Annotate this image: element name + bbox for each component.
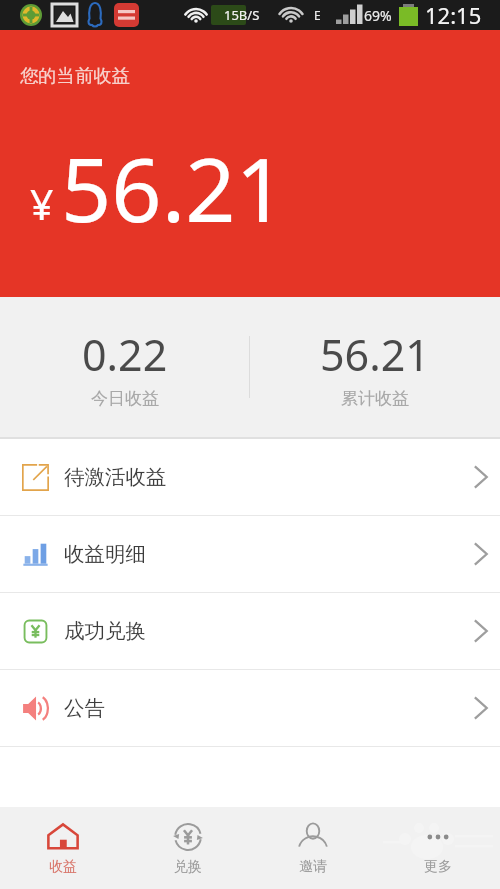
staticText: 69%: [364, 6, 392, 25]
staticText: ¥: [30, 176, 54, 232]
staticText: 收益: [49, 858, 77, 876]
button[interactable]: 成功兑换: [0, 593, 500, 669]
staticText: 公告: [64, 695, 105, 721]
staticText: 0.22: [82, 325, 168, 384]
button[interactable]: 兑换: [125, 807, 250, 889]
staticText: 今日收益: [91, 388, 159, 409]
button[interactable]: 待激活收益: [0, 439, 500, 515]
staticText: 15B/S: [224, 6, 260, 24]
button[interactable]: 累计收益: [250, 297, 500, 437]
button[interactable]: 邀请: [250, 807, 375, 889]
staticText: 56.21: [320, 325, 430, 384]
button[interactable]: 更多: [375, 807, 500, 889]
staticText: 更多: [424, 858, 452, 876]
button[interactable]: 今日收益: [0, 297, 249, 437]
staticText: 兑换: [174, 858, 202, 876]
staticText: 收益明细: [64, 541, 146, 567]
staticText: 待激活收益: [64, 464, 167, 490]
button[interactable]: 收益: [0, 807, 125, 889]
button[interactable]: 收益明细: [0, 516, 500, 592]
staticText: 您的当前收益: [20, 64, 130, 87]
button[interactable]: 公告: [0, 670, 500, 746]
staticText: 成功兑换: [64, 618, 146, 644]
staticText: 累计收益: [341, 388, 409, 409]
staticText: 邀请: [299, 858, 327, 876]
staticText: E: [314, 7, 321, 23]
staticText: 12:15: [425, 0, 482, 30]
staticText: 56.21: [61, 128, 286, 248]
